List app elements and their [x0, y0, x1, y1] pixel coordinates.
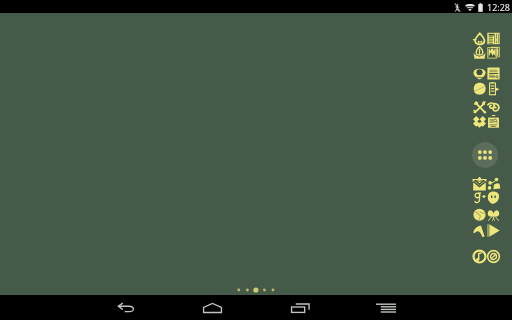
button[interactable]: Google Plus: [473, 191, 486, 204]
staticText: 12:28: [487, 1, 511, 13]
button[interactable]: Bat: [487, 208, 500, 221]
button[interactable]: Share: [473, 224, 486, 237]
button[interactable]: Notes: [487, 67, 500, 80]
button[interactable]: Dropbox: [473, 115, 486, 128]
button[interactable]: Battery: [487, 82, 500, 95]
button[interactable]: Back: [109, 295, 143, 320]
button[interactable]: Paint: [487, 100, 500, 113]
button[interactable]: Menu: [369, 295, 403, 320]
button[interactable]: Recent apps: [283, 295, 317, 320]
button[interactable]: Camera: [473, 46, 486, 59]
button[interactable]: Apps: [472, 142, 498, 168]
button[interactable]: Browser: [473, 82, 486, 95]
button[interactable]: Hangouts: [487, 191, 500, 204]
button[interactable]: Files: [487, 115, 500, 128]
button[interactable]: Maps: [473, 208, 486, 221]
button[interactable]: Tools: [473, 100, 486, 113]
button[interactable]: Play: [487, 224, 500, 237]
button[interactable]: Email: [472, 177, 487, 192]
button[interactable]: Home: [195, 295, 229, 320]
button[interactable]: Photos: [487, 46, 500, 59]
button[interactable]: Music App: [473, 250, 486, 263]
button[interactable]: Weather: [473, 32, 486, 45]
button[interactable]: Settings: [487, 250, 500, 263]
button[interactable]: Newsstand: [487, 32, 500, 45]
button[interactable]: Contacts: [487, 177, 501, 191]
button[interactable]: Music: [473, 67, 486, 80]
